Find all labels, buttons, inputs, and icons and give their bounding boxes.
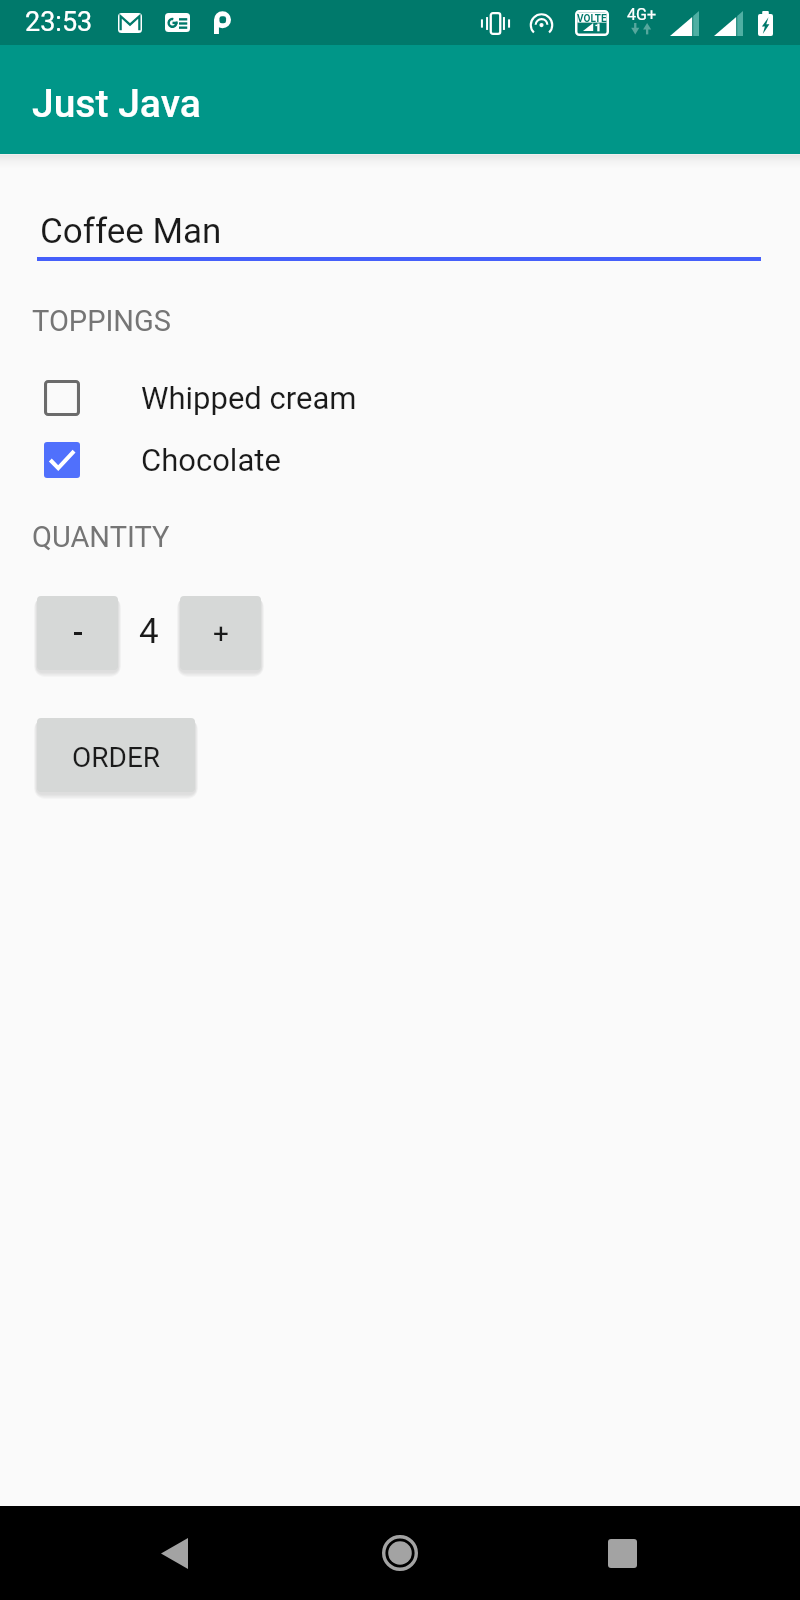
staticText: 4G+ xyxy=(627,5,656,24)
staticText: Chocolate xyxy=(141,442,281,478)
staticText: 4 xyxy=(139,611,159,652)
button[interactable]: ORDER xyxy=(37,718,195,792)
button[interactable]: Increase quantity xyxy=(180,596,261,670)
staticText: 23:53 xyxy=(25,6,93,38)
staticText: QUANTITY xyxy=(32,520,170,554)
button[interactable]: Home xyxy=(368,1521,432,1585)
staticText: TOPPINGS xyxy=(32,304,171,338)
button[interactable]: Recent apps xyxy=(590,1521,654,1585)
staticText: Whipped cream xyxy=(141,380,357,416)
staticText: VOLTE xyxy=(577,13,607,25)
button[interactable]: Back xyxy=(142,1521,206,1585)
button[interactable]: Decrease quantity xyxy=(37,596,118,670)
button[interactable]: Whipped cream xyxy=(0,380,800,416)
staticText: Coffee Man xyxy=(40,211,222,252)
button[interactable]: Chocolate xyxy=(0,442,800,478)
staticText: Just Java xyxy=(32,81,201,127)
staticText: ORDER xyxy=(72,741,161,774)
staticText: + xyxy=(213,617,229,650)
button[interactable]: Name field xyxy=(37,211,761,261)
